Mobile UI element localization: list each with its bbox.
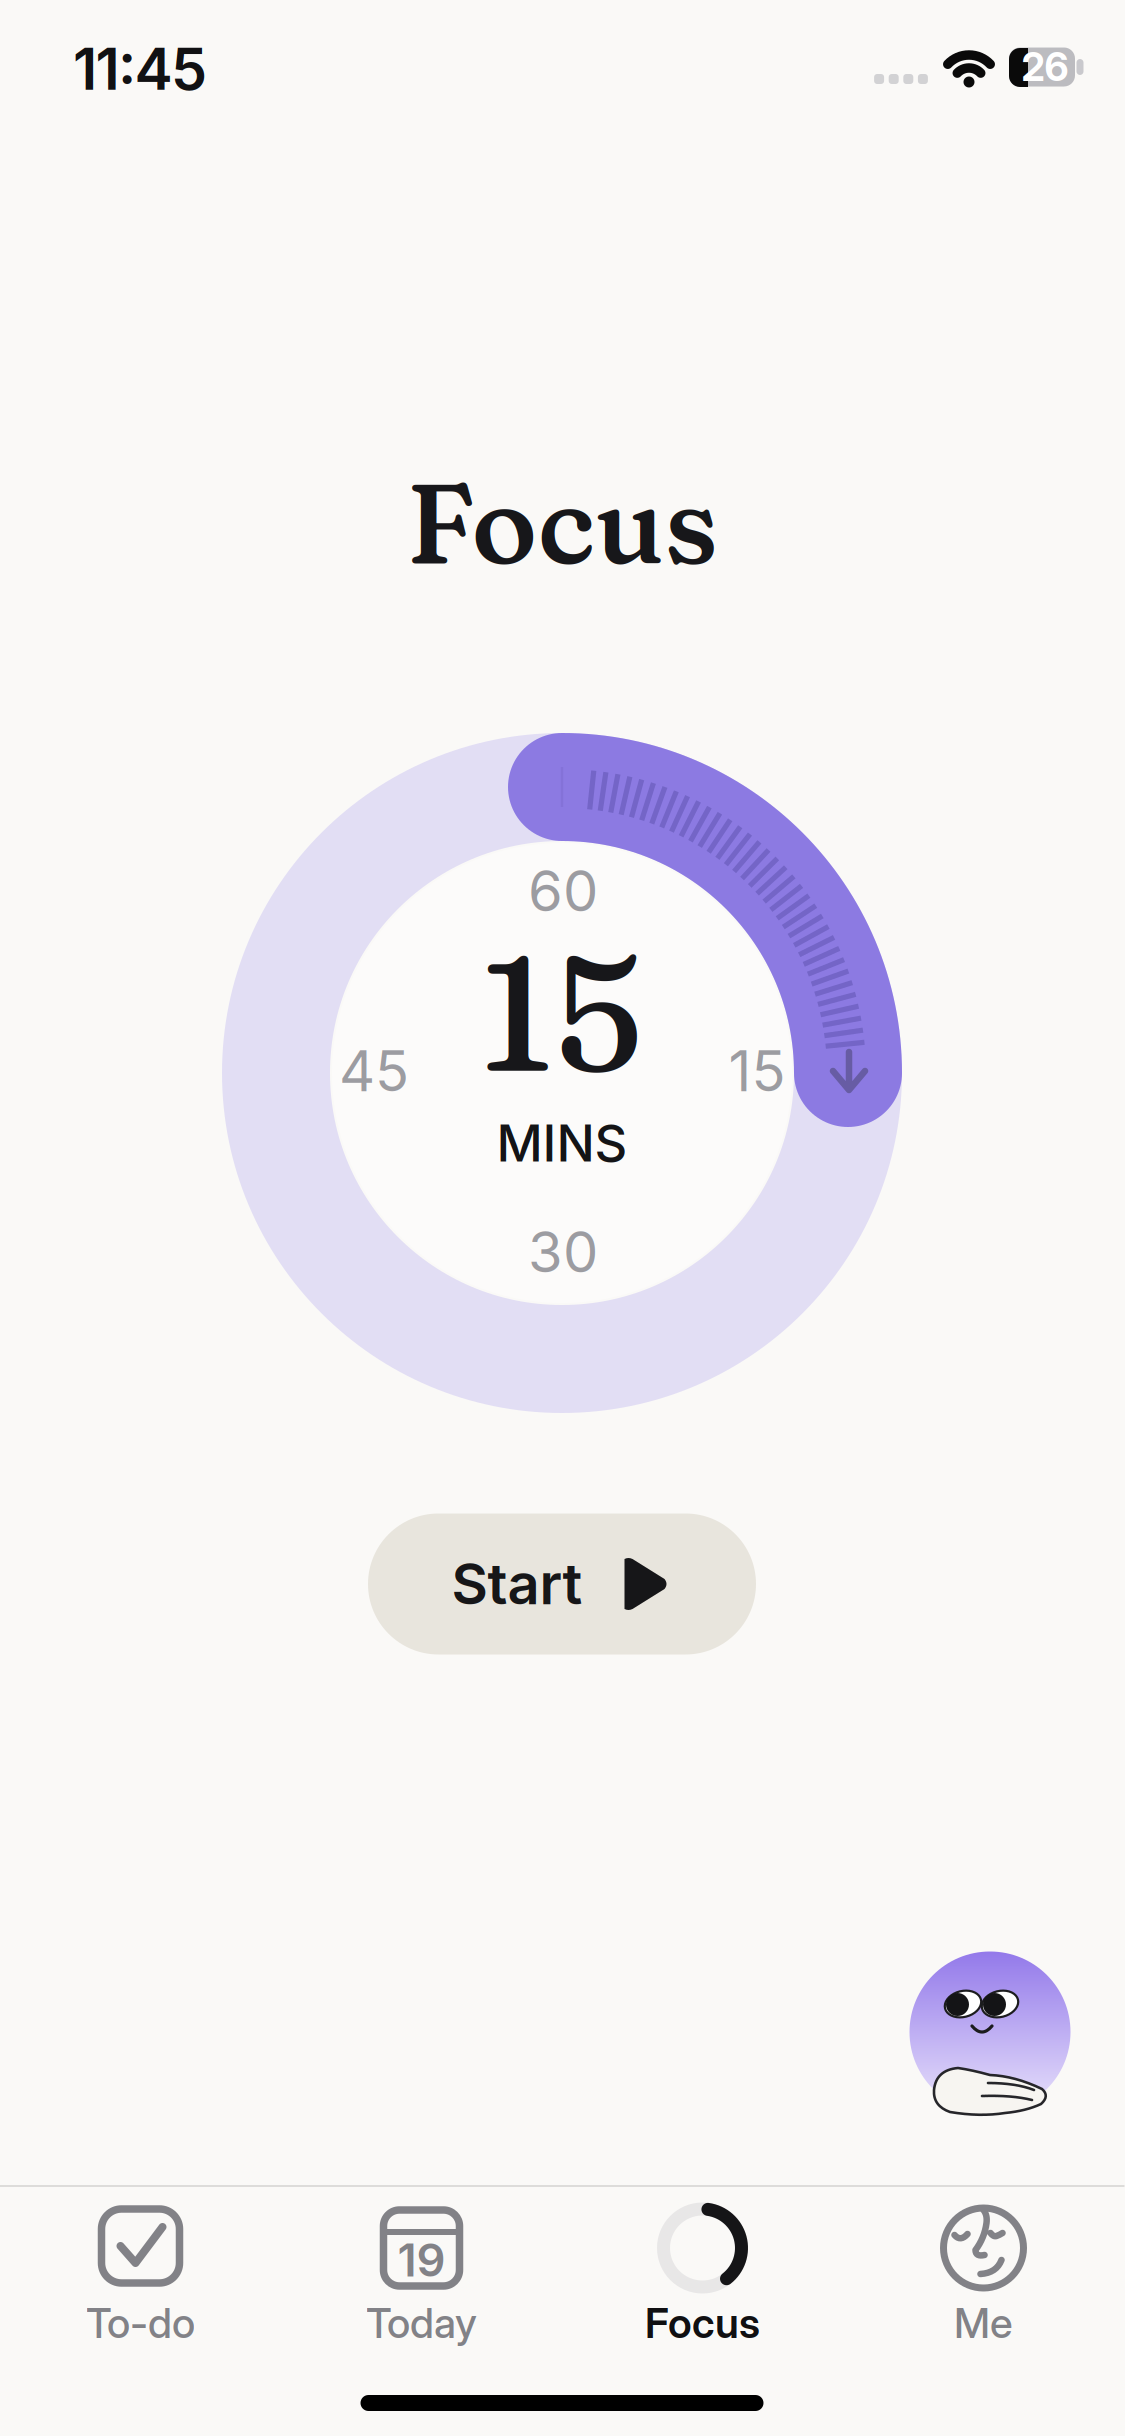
staticText: 45 — [339, 1037, 409, 1105]
staticText: Today — [366, 2298, 477, 2348]
staticText: 15 — [728, 1037, 785, 1105]
staticText: 30 — [528, 1218, 598, 1286]
staticText: MINS — [496, 1112, 627, 1174]
button[interactable]: To-do — [0, 2202, 281, 2352]
button[interactable]: Focus — [562, 2202, 843, 2352]
staticText: Me — [954, 2298, 1013, 2348]
staticText: Start — [451, 1550, 582, 1618]
staticText: 19 — [397, 2233, 445, 2287]
staticText: Focus — [645, 2298, 760, 2348]
staticText: 26 — [1021, 44, 1068, 90]
button[interactable]: 19 — [281, 2202, 562, 2352]
button[interactable]: Start — [368, 1513, 756, 1654]
staticText: 15 — [480, 914, 643, 1112]
staticText: Focus — [406, 454, 717, 592]
button[interactable]: Me — [843, 2202, 1124, 2352]
staticText: To-do — [86, 2298, 195, 2348]
staticText: 11:45 — [73, 34, 207, 104]
staticText: 60 — [528, 857, 598, 925]
